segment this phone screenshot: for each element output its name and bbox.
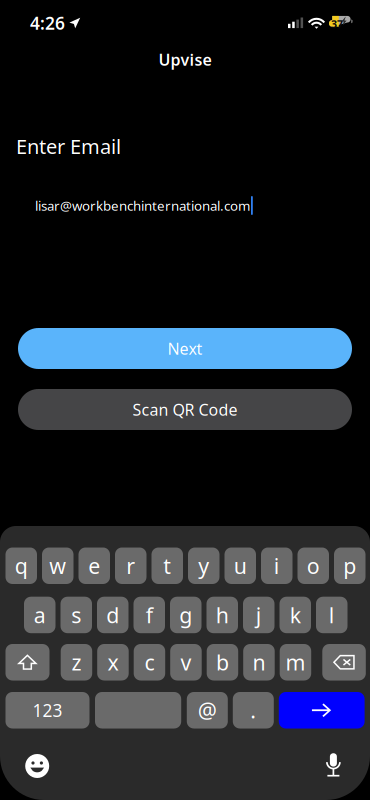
button[interactable]: b [207,644,238,680]
staticText: j [256,601,262,629]
button[interactable]: Go [279,692,365,728]
staticText: o [307,552,320,580]
button[interactable]: v [170,644,202,680]
button[interactable]: a [24,597,55,633]
button[interactable]: l [316,597,347,633]
staticText: w [49,552,66,580]
staticText: v [180,648,191,676]
staticText: x [107,648,118,676]
staticText: z [71,648,81,676]
button[interactable]: m [280,644,311,680]
staticText: Next [167,338,202,359]
staticText: q [15,552,28,580]
staticText: Enter Email [16,133,121,160]
button[interactable]: w [42,547,73,584]
button[interactable]: Next [18,328,352,369]
button[interactable]: k [279,597,311,633]
staticText: t [163,552,171,580]
staticText: 37 [331,17,343,31]
staticText: s [71,601,81,629]
staticText: @ [198,696,217,724]
button[interactable]: Voice input [311,745,355,785]
staticText: lisar@workbenchinternational.com [35,197,250,214]
button[interactable]: f [133,597,165,633]
staticText: 123 [32,699,62,722]
staticText: y [198,552,209,580]
button[interactable]: p [334,547,365,584]
button[interactable]: z [61,644,92,680]
staticText: h [216,601,229,629]
button[interactable]: d [97,597,128,633]
button[interactable]: g [170,597,201,633]
staticText: a [34,601,46,629]
button[interactable]: Delete [322,644,366,680]
button[interactable]: 123 [5,692,89,728]
button[interactable]: r [115,547,146,584]
staticText: Upvise [158,49,211,70]
staticText: u [234,552,247,580]
staticText: Scan QR Code [132,399,237,420]
staticText: g [179,601,192,629]
button[interactable]: t [151,547,183,584]
staticText: p [343,552,356,580]
button[interactable]: u [224,547,256,584]
staticText: . [250,696,256,724]
button[interactable]: q [5,547,37,584]
staticText: n [252,648,265,676]
staticText: m [285,648,305,676]
staticText: b [216,648,229,676]
button[interactable]: c [134,644,165,680]
button[interactable]: e [78,547,110,584]
button[interactable]: i [261,547,292,584]
button[interactable]: @ [187,692,228,728]
staticText: k [290,601,301,629]
staticText: r [126,552,135,580]
button[interactable]: x [97,644,129,680]
staticText: c [144,648,154,676]
button[interactable]: Scan QR Code [18,389,352,430]
button[interactable]: Emoji [15,746,59,786]
button[interactable]: Shift [5,644,49,680]
button[interactable]: o [297,547,329,584]
staticText: l [329,601,335,629]
staticText: d [106,601,119,629]
button[interactable]: . [233,692,274,728]
button[interactable]: s [60,597,92,633]
staticText: i [274,552,280,580]
button[interactable]: h [206,597,238,633]
staticText: 4:26 [30,11,65,34]
staticText: e [88,552,100,580]
button[interactable]: j [243,597,274,633]
button[interactable]: n [243,644,275,680]
button[interactable]: y [188,547,219,584]
button[interactable] [95,692,181,728]
staticText: f [146,601,153,629]
